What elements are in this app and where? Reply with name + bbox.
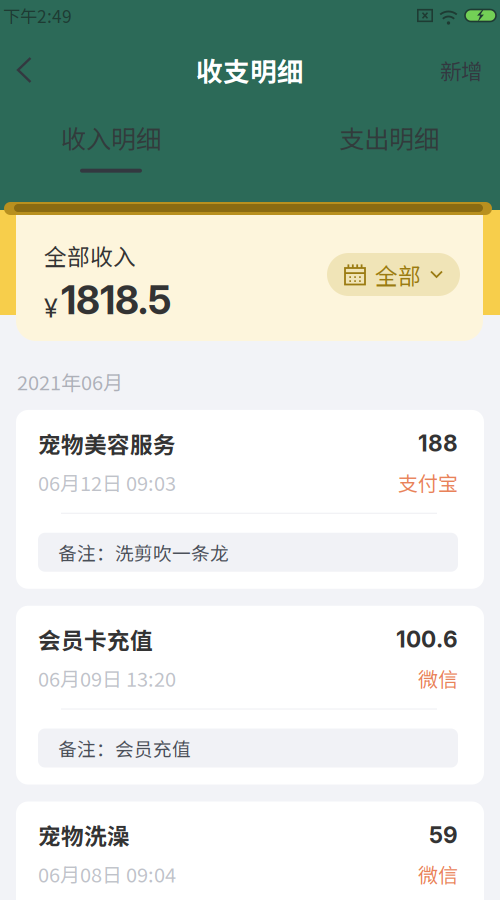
staticText: 全部收入 <box>44 239 136 272</box>
staticText: ¥ <box>44 293 58 324</box>
button[interactable]: 新增 <box>426 31 500 109</box>
button[interactable]: 宠物洗澡 <box>16 801 484 900</box>
button[interactable]: 收入明细 <box>0 109 222 202</box>
staticText: 收入明细 <box>61 119 161 156</box>
button[interactable]: 支出明细 <box>278 109 500 202</box>
button[interactable]: 返回 <box>0 31 53 109</box>
staticText: 2021年06月 <box>17 367 123 396</box>
staticText: 全部 <box>375 258 421 291</box>
button[interactable]: 全部 <box>327 253 460 296</box>
staticText: 备注：洗剪吹一条龙 <box>58 539 229 566</box>
staticText: 1818.5 <box>61 277 171 324</box>
staticText: 微信 <box>418 859 458 888</box>
button[interactable]: 宠物美容服务 <box>16 410 484 589</box>
staticText: 100.6 <box>396 625 458 653</box>
staticText: 188 <box>418 430 458 457</box>
staticText: 06月08日 09:04 <box>38 859 176 888</box>
button[interactable]: 会员卡充值 <box>16 606 484 784</box>
staticText: 支付宝 <box>398 468 458 497</box>
staticText: 会员卡充值 <box>38 623 153 655</box>
staticText: 59 <box>429 821 458 849</box>
staticText: 收支明细 <box>196 51 304 89</box>
staticText: 微信 <box>418 664 458 693</box>
staticText: 新增 <box>440 55 482 85</box>
staticText: 宠物洗澡 <box>38 818 130 851</box>
staticText: 下午2:49 <box>3 3 72 28</box>
staticText: 支出明细 <box>339 119 439 156</box>
staticText: 备注：会员充值 <box>58 734 191 761</box>
staticText: 宠物美容服务 <box>38 427 176 460</box>
staticText: 06月12日 09:03 <box>38 468 176 497</box>
staticText: 06月09日 13:20 <box>38 664 176 693</box>
